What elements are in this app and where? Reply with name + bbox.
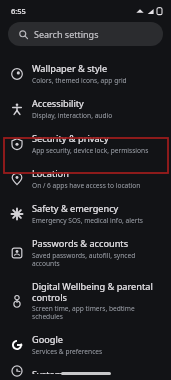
staticText: Security & privacy [32, 132, 109, 145]
other: Accessibility [11, 103, 23, 115]
other: Google [11, 339, 23, 351]
button[interactable]: Search settings [8, 22, 163, 46]
button[interactable]: Security & privacy [0, 126, 171, 161]
staticText: Emergency SOS, medical info, alerts [32, 216, 143, 225]
staticText: App security, device lock, permissions [32, 146, 149, 155]
button[interactable]: System [0, 362, 171, 380]
staticText: Accessibility [32, 97, 84, 110]
staticText: Search settings [34, 28, 99, 40]
staticText: On / 6 apps have access to location [32, 181, 141, 190]
button[interactable]: Digital Wellbeing & parental controls [0, 274, 171, 327]
staticText: Google [32, 333, 64, 346]
button[interactable]: Accessibility [0, 91, 171, 126]
other: Safety & emergency [11, 208, 23, 220]
other: Security & privacy [11, 138, 23, 150]
staticText: Screen time, app timers, bedtime schedul… [32, 304, 163, 321]
other: System [11, 368, 23, 374]
staticText: 6:55 [11, 6, 26, 16]
staticText: Digital Wellbeing & parental controls [32, 280, 163, 303]
other: Wallpaper & style [11, 68, 23, 80]
staticText: System [32, 368, 64, 374]
staticText: Colors, themed icons, app grid [32, 76, 127, 85]
button[interactable]: Passwords & accounts [0, 231, 171, 274]
button[interactable]: Safety & emergency [0, 196, 171, 231]
button[interactable]: Location [0, 161, 171, 196]
staticText: Saved passwords, autofill, synced accoun… [32, 251, 163, 268]
staticText: Location [32, 167, 69, 180]
other: Digital Wellbeing & parental controls [11, 295, 23, 307]
staticText: Passwords & accounts [32, 237, 129, 250]
staticText: Services & preferences [32, 347, 103, 356]
staticText: Wallpaper & style [32, 62, 108, 75]
other: Passwords & accounts [11, 247, 23, 259]
button[interactable]: Google [0, 327, 171, 362]
staticText: Safety & emergency [32, 202, 119, 215]
other: Location [11, 173, 23, 185]
button[interactable]: Wallpaper & style [0, 56, 171, 91]
staticText: Display, interaction, audio [32, 111, 113, 120]
